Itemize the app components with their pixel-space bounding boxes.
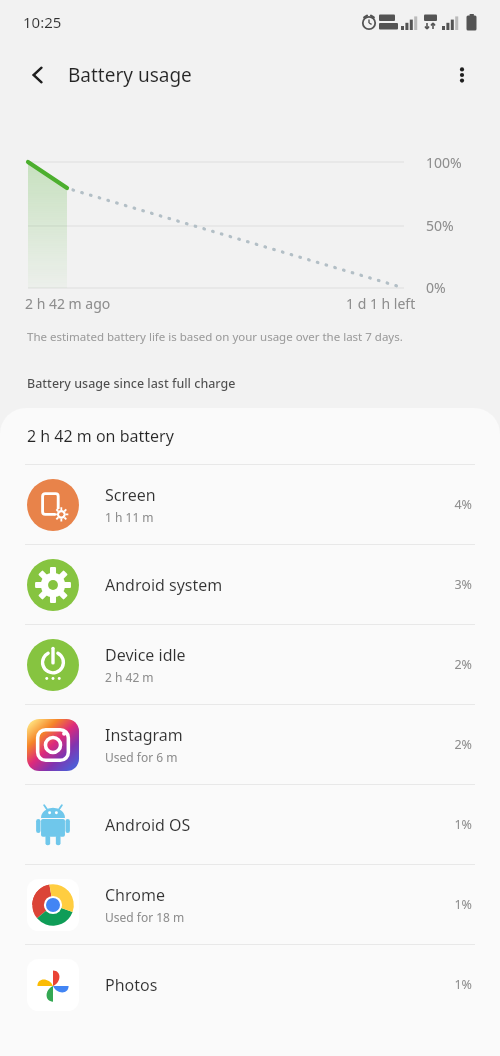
staticText: 2 h 42 m xyxy=(105,669,154,685)
staticText: 4% xyxy=(432,496,472,513)
button[interactable]: Android system xyxy=(0,545,500,624)
button[interactable]: Screen xyxy=(0,465,500,544)
button[interactable]: Device idle xyxy=(0,625,500,704)
staticText: 1% xyxy=(432,976,472,993)
staticText: 1 d 1 h left xyxy=(346,294,416,313)
staticText: Used for 18 m xyxy=(105,909,185,925)
staticText: 1 h 11 m xyxy=(105,509,154,525)
staticText: Battery usage since last full charge xyxy=(27,375,236,392)
staticText: 2 h 42 m on battery xyxy=(27,425,174,447)
staticText: 50% xyxy=(426,216,454,235)
staticText: 100% xyxy=(426,153,462,172)
staticText: Battery usage xyxy=(68,62,192,88)
staticText: Instagram xyxy=(105,724,183,746)
staticText: 1% xyxy=(432,816,472,833)
staticText: Android system xyxy=(105,574,223,596)
staticText: 10:25 xyxy=(23,12,62,32)
button[interactable]: Back xyxy=(14,51,62,99)
staticText: Device idle xyxy=(105,644,186,666)
staticText: 2% xyxy=(432,736,472,753)
staticText: 0% xyxy=(426,278,446,297)
button[interactable]: Chrome xyxy=(0,865,500,944)
button[interactable]: Photos xyxy=(0,945,500,1024)
staticText: Chrome xyxy=(105,884,165,906)
button[interactable]: Instagram xyxy=(0,705,500,784)
staticText: Photos xyxy=(105,974,158,996)
staticText: 1% xyxy=(432,896,472,913)
staticText: 2 h 42 m ago xyxy=(25,294,111,313)
staticText: The estimated battery life is based on y… xyxy=(27,329,403,345)
button[interactable]: Android OS xyxy=(0,785,500,864)
staticText: Screen xyxy=(105,484,156,506)
staticText: Android OS xyxy=(105,814,191,836)
staticText: Used for 6 m xyxy=(105,749,178,765)
button[interactable]: More options xyxy=(438,51,486,99)
staticText: 2% xyxy=(432,656,472,673)
staticText: 3% xyxy=(432,576,472,593)
